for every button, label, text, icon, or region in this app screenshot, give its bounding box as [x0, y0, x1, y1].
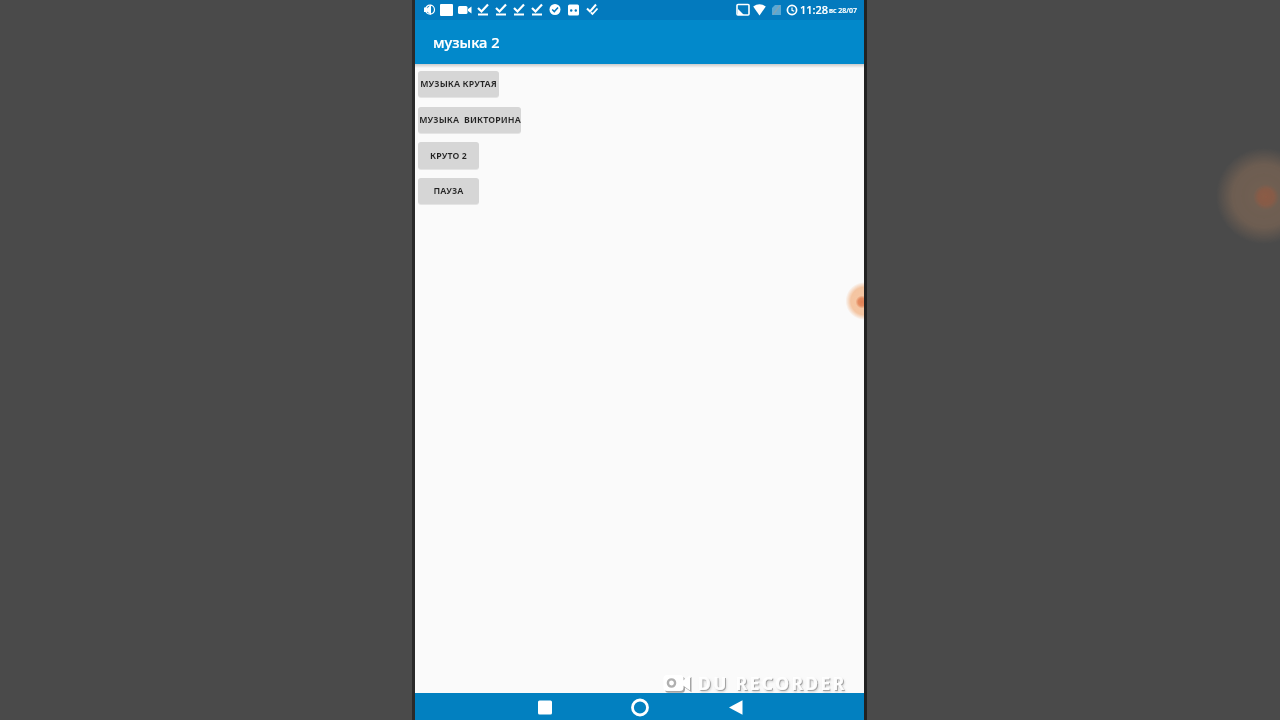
staticText: вс 28/07 [829, 6, 858, 16]
button[interactable]: КРУТО 2 [418, 142, 479, 169]
staticText: МУЗЫКА ВИКТОРИНА [419, 114, 521, 126]
staticText: МУЗЫКА КРУТАЯ [420, 78, 497, 90]
button[interactable]: МУЗЫКА КРУТАЯ [418, 71, 499, 97]
button[interactable]: МУЗЫКА ВИКТОРИНА [418, 107, 521, 133]
staticText: DU RECORDER [698, 671, 847, 695]
staticText: музыка 2 [433, 32, 500, 52]
button[interactable]: ПАУЗА [418, 178, 479, 204]
staticText: DU RECORDER [699, 672, 848, 696]
staticText: КРУТО 2 [430, 150, 467, 162]
staticText: 11:28 [800, 2, 829, 17]
staticText: ПАУЗА [433, 185, 464, 197]
